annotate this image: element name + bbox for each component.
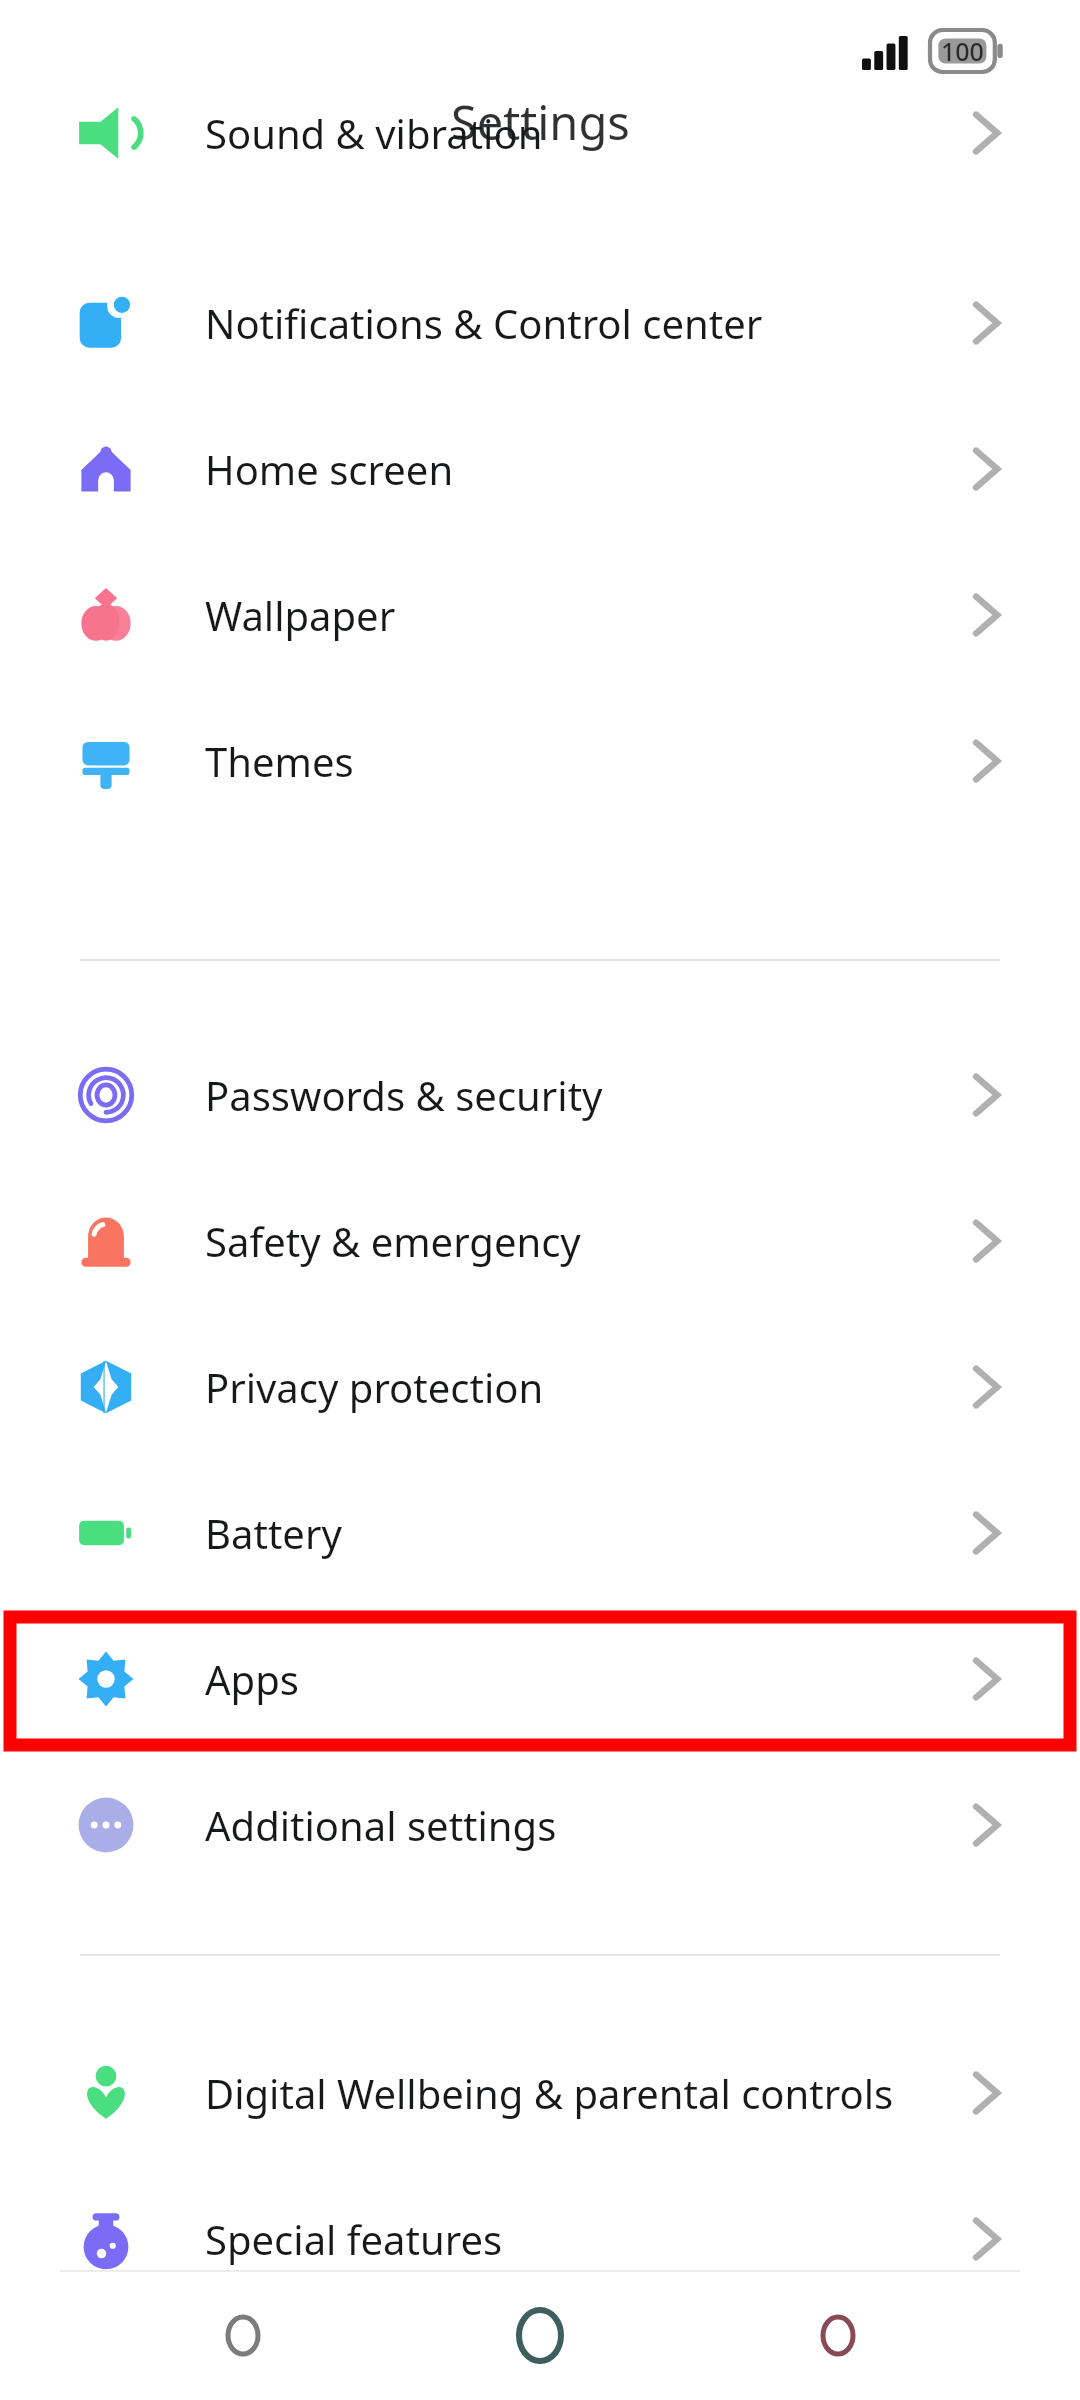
staticText: Battery [205, 1506, 342, 1560]
button[interactable]: Digital Wellbeing & parental controls [0, 2020, 1080, 2166]
button[interactable]: Battery [0, 1460, 1080, 1606]
staticText: 100 [941, 34, 984, 68]
button[interactable]: Wallpaper [0, 542, 1080, 688]
button[interactable]: Safety & emergency [0, 1168, 1080, 1314]
button[interactable]: Home screen [0, 396, 1080, 542]
staticText: Notifications & Control center [205, 296, 763, 350]
button[interactable]: Privacy protection [0, 1314, 1080, 1460]
staticText: Themes [205, 734, 354, 788]
staticText: Safety & emergency [205, 1214, 581, 1268]
button[interactable]: Recents [188, 2280, 298, 2390]
button[interactable]: Notifications & Control center [0, 250, 1080, 396]
staticText: Home screen [205, 442, 454, 496]
button[interactable]: Home [485, 2280, 595, 2390]
staticText: Wallpaper [205, 588, 396, 642]
staticText: Apps [205, 1652, 299, 1706]
button[interactable]: Apps [0, 1606, 1080, 1752]
staticText: Digital Wellbeing & parental controls [205, 2066, 894, 2120]
staticText: Settings [451, 90, 630, 154]
button[interactable]: Additional settings [0, 1752, 1080, 1898]
button[interactable]: Themes [0, 688, 1080, 834]
staticText: Sound & vibration [205, 106, 543, 160]
button[interactable]: Special features [0, 2166, 1080, 2312]
staticText: Passwords & security [205, 1068, 603, 1122]
staticText: Special features [205, 2212, 503, 2266]
button[interactable]: Passwords & security [0, 1022, 1080, 1168]
staticText: Additional settings [205, 1798, 557, 1852]
staticText: Privacy protection [205, 1360, 544, 1414]
button[interactable]: Back [783, 2280, 893, 2390]
